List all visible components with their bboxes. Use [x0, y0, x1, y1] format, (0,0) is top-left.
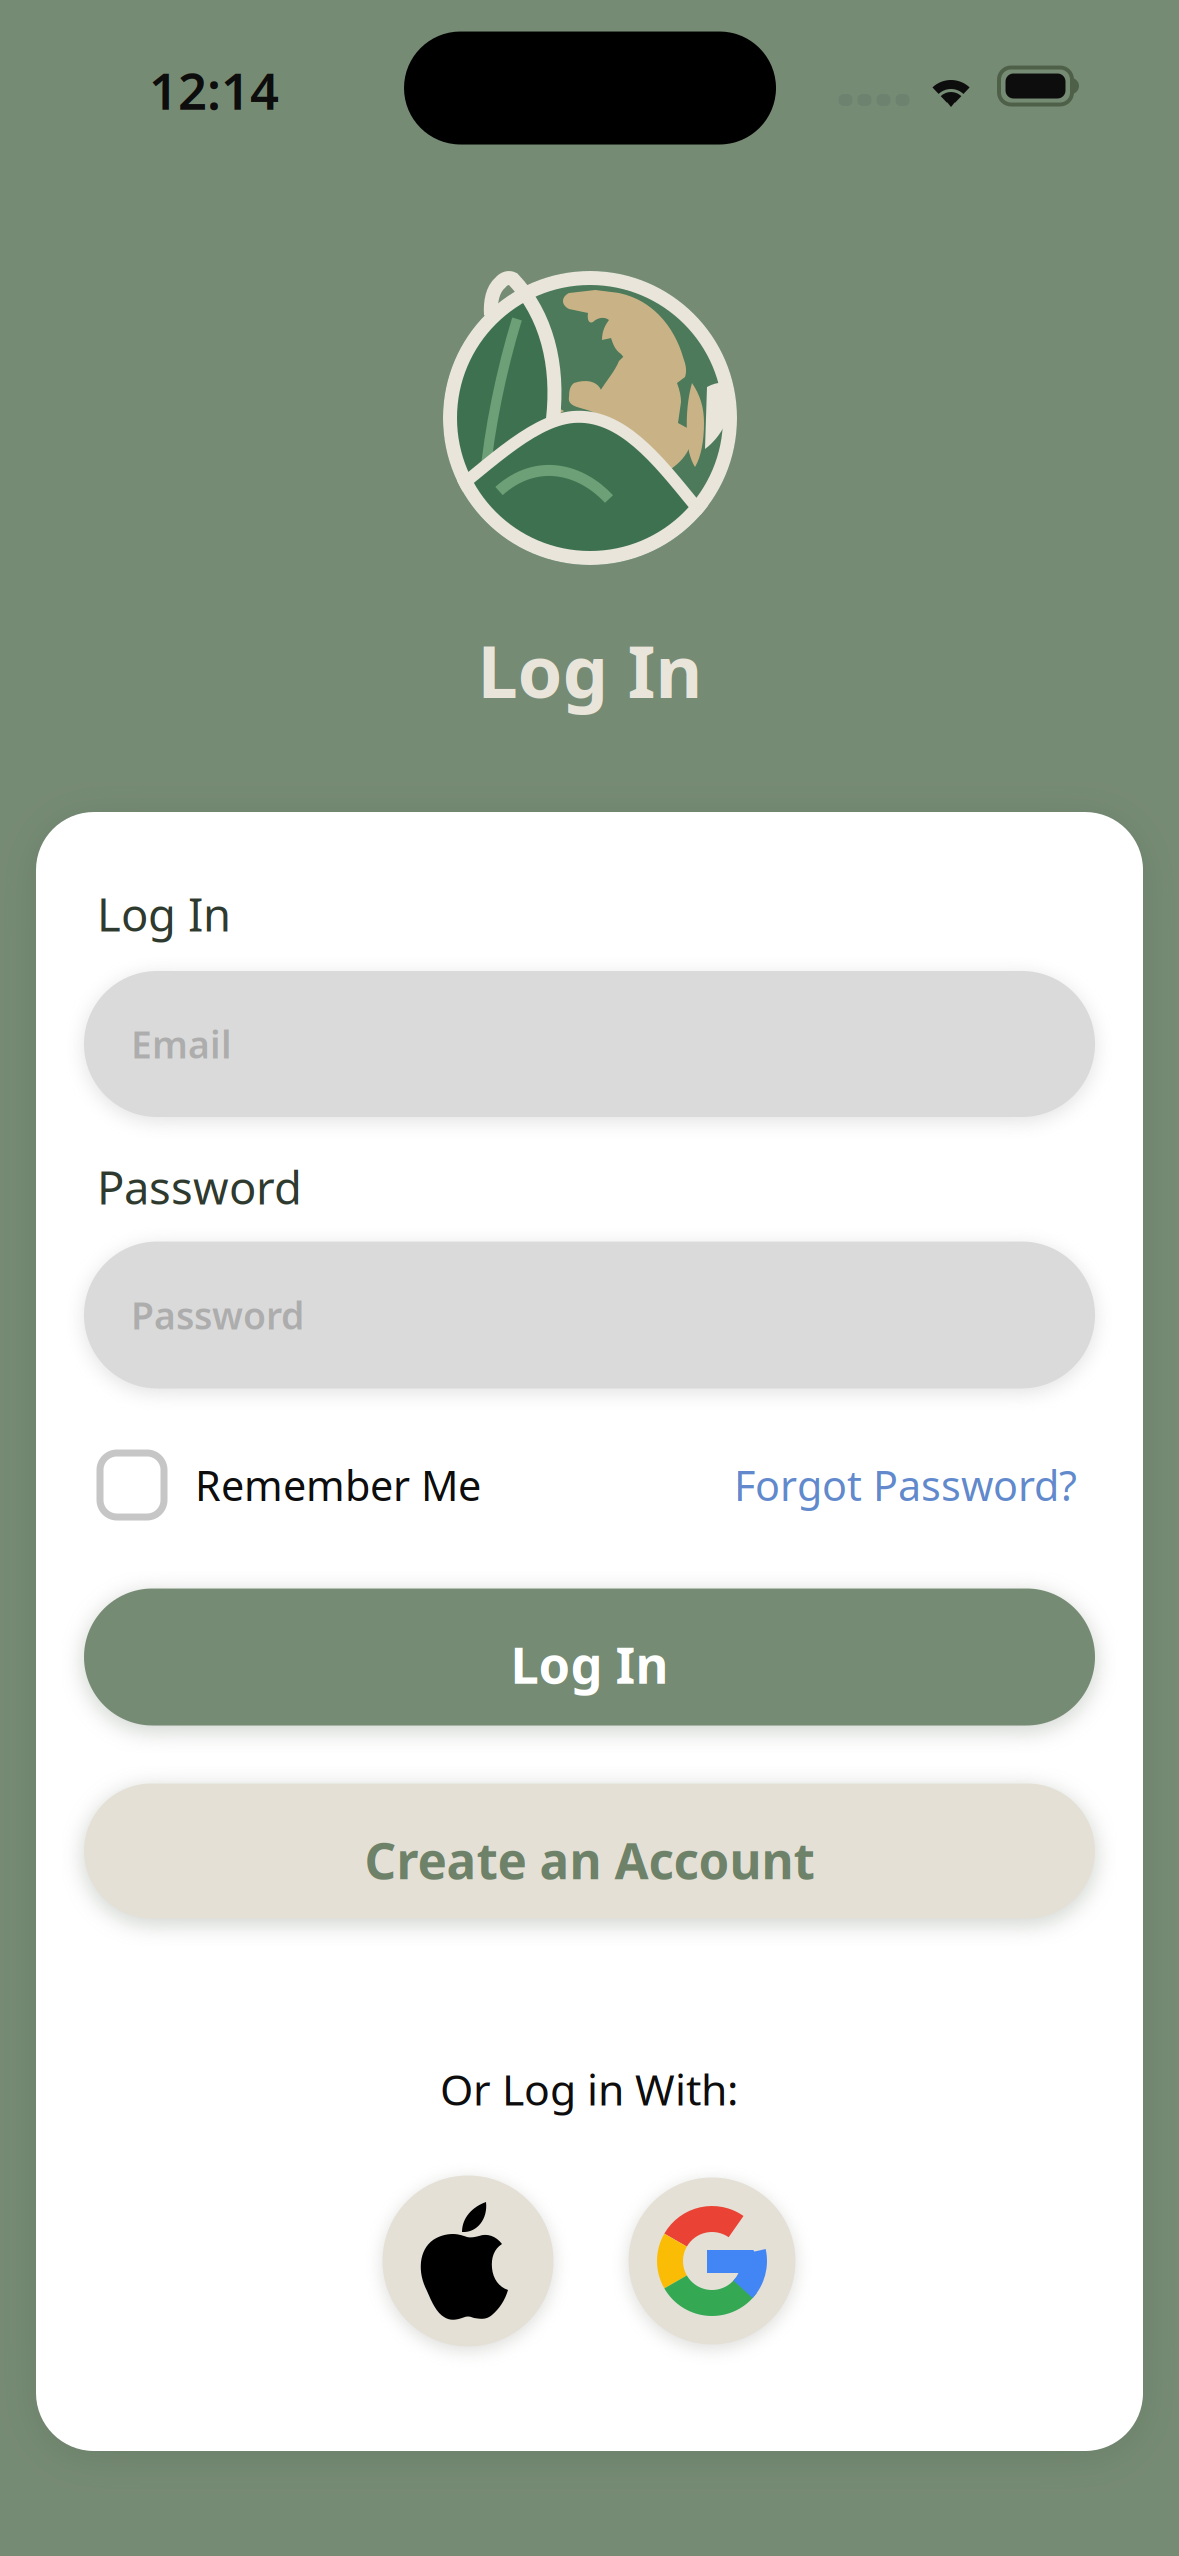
- staticText: Create an Account: [364, 1827, 814, 1893]
- staticText: Password: [131, 1290, 304, 1340]
- button[interactable]: Remember Me: [100, 1445, 580, 1525]
- staticText: Password: [97, 1157, 302, 1217]
- staticText: Log In: [510, 1630, 668, 1698]
- staticText: Email: [131, 1019, 232, 1069]
- button[interactable]: Create an Account: [84, 1783, 1095, 1918]
- button[interactable]: Sign in with Apple: [382, 2175, 553, 2346]
- staticText: Remember Me: [195, 1458, 481, 1512]
- staticText: Or Log in With:: [440, 2061, 738, 2117]
- staticText: Forgot Password?: [734, 1458, 1077, 1512]
- staticText: Log In: [477, 622, 702, 718]
- button[interactable]: Sign in with Google: [628, 2177, 795, 2344]
- button[interactable]: Log In: [84, 1588, 1095, 1725]
- staticText: 12:14: [149, 56, 279, 124]
- staticText: Log In: [97, 884, 231, 944]
- button[interactable]: Forgot Password?: [657, 1445, 1077, 1525]
